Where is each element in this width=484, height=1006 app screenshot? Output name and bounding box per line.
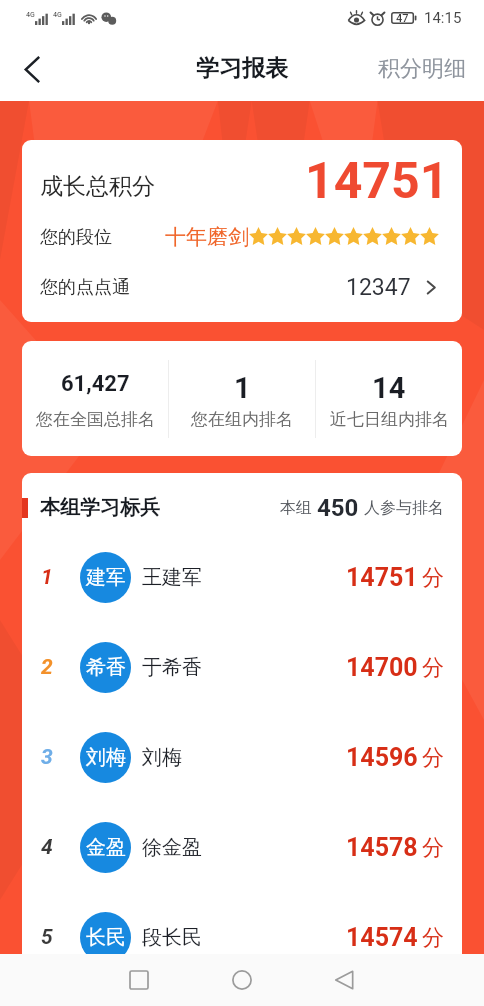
staticText: 14 [372, 371, 406, 405]
staticText: 段长民 [142, 925, 202, 950]
staticText: 近七日组内排名 [330, 409, 449, 430]
staticText: 希香 [86, 655, 126, 680]
staticText: 14700 [346, 653, 418, 682]
staticText: 您的段位 [40, 226, 112, 249]
staticText: 王建军 [142, 565, 202, 590]
staticText: 十年磨剑 [165, 224, 249, 250]
button[interactable]: 1 [22, 532, 462, 622]
staticText: 12347 [346, 274, 411, 301]
staticText: 分 [422, 654, 444, 682]
staticText: 5 [41, 925, 53, 950]
button[interactable]: 积分明细 [378, 55, 466, 83]
staticText: 成长总积分 [40, 172, 155, 201]
staticText: 14751 [305, 152, 449, 203]
button[interactable]: Home [216, 954, 268, 1006]
staticText: 学习报表 [196, 54, 288, 83]
staticText: 47 [396, 12, 409, 25]
staticText: 4G [53, 11, 62, 19]
staticText: 本组 [280, 498, 312, 518]
staticText: 14596 [346, 743, 418, 772]
staticText: 长民 [86, 925, 126, 950]
staticText: 积分明细 [378, 55, 466, 83]
staticText: 分 [422, 744, 444, 772]
staticText: 您的点点通 [40, 276, 130, 299]
button[interactable]: Recent apps [113, 954, 165, 1006]
staticText: 分 [422, 924, 444, 952]
staticText: 刘梅 [142, 745, 182, 770]
button[interactable]: Back [318, 954, 370, 1006]
button[interactable]: 14 [316, 341, 462, 456]
button[interactable]: 您的点点通 [40, 262, 439, 312]
staticText: 14:15 [424, 9, 462, 27]
staticText: 本组学习标兵 [40, 495, 160, 520]
staticText: 分 [422, 834, 444, 862]
button[interactable]: 1 [169, 341, 315, 456]
button[interactable]: 3 [22, 712, 462, 802]
staticText: 刘梅 [86, 745, 126, 770]
staticText: 于希香 [142, 655, 202, 680]
staticText: 4 [41, 835, 53, 860]
staticText: 4G [26, 11, 35, 19]
staticText: 1 [41, 565, 53, 590]
button[interactable]: 61,427 [22, 341, 168, 456]
staticText: 分 [422, 564, 444, 592]
staticText: 61,427 [61, 371, 130, 397]
staticText: 2 [41, 655, 53, 680]
staticText: 14574 [346, 923, 418, 952]
staticText: 人参与排名 [364, 498, 444, 518]
staticText: 金盈 [86, 835, 126, 860]
staticText: 3 [41, 745, 53, 770]
button[interactable]: 4 [22, 802, 462, 892]
staticText: 14578 [346, 833, 418, 862]
staticText: 建军 [86, 565, 126, 590]
staticText: 您在组内排名 [191, 409, 293, 430]
staticText: 1 [234, 371, 251, 405]
button[interactable]: 2 [22, 622, 462, 712]
staticText: 徐金盈 [142, 835, 202, 860]
staticText: 14751 [346, 563, 418, 592]
staticText: 450 [317, 494, 359, 522]
button[interactable]: 5 [22, 892, 462, 982]
staticText: 您在全国总排名 [36, 409, 155, 430]
button[interactable]: Back [0, 37, 64, 101]
